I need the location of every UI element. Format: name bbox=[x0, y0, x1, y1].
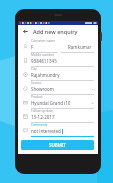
staticText: Add new enquiry bbox=[33, 28, 78, 35]
button[interactable]: Back bbox=[21, 27, 30, 36]
staticText: 13-12-2017 bbox=[31, 114, 55, 120]
staticText: Rajahmundry bbox=[31, 72, 60, 78]
button[interactable]: Customer name bbox=[21, 39, 94, 53]
staticText: Comments bbox=[31, 123, 48, 127]
button[interactable]: Mobile number bbox=[21, 53, 94, 67]
staticText: not interested bbox=[31, 128, 61, 134]
button[interactable]: Comments bbox=[21, 123, 94, 137]
staticText: Customer name bbox=[31, 39, 56, 43]
staticText: SUBMIT bbox=[49, 142, 66, 148]
button[interactable]: Follow up date bbox=[21, 109, 94, 123]
button[interactable]: Source bbox=[21, 81, 94, 95]
staticText: Mobile number bbox=[31, 53, 55, 57]
staticText: Showroom bbox=[31, 86, 54, 92]
staticText: Follow up date bbox=[31, 109, 53, 113]
staticText: Hyundai Grand i10 bbox=[31, 100, 71, 106]
button[interactable]: SUBMIT bbox=[21, 140, 94, 150]
button[interactable]: City bbox=[21, 67, 94, 81]
staticText: 9384811345 bbox=[31, 58, 57, 64]
button[interactable]: Product bbox=[21, 95, 94, 109]
staticText: Source bbox=[31, 81, 42, 85]
staticText: Ramkumar bbox=[68, 44, 92, 50]
staticText: City bbox=[31, 67, 37, 71]
staticText: F bbox=[31, 44, 34, 50]
staticText: Product bbox=[31, 95, 43, 99]
